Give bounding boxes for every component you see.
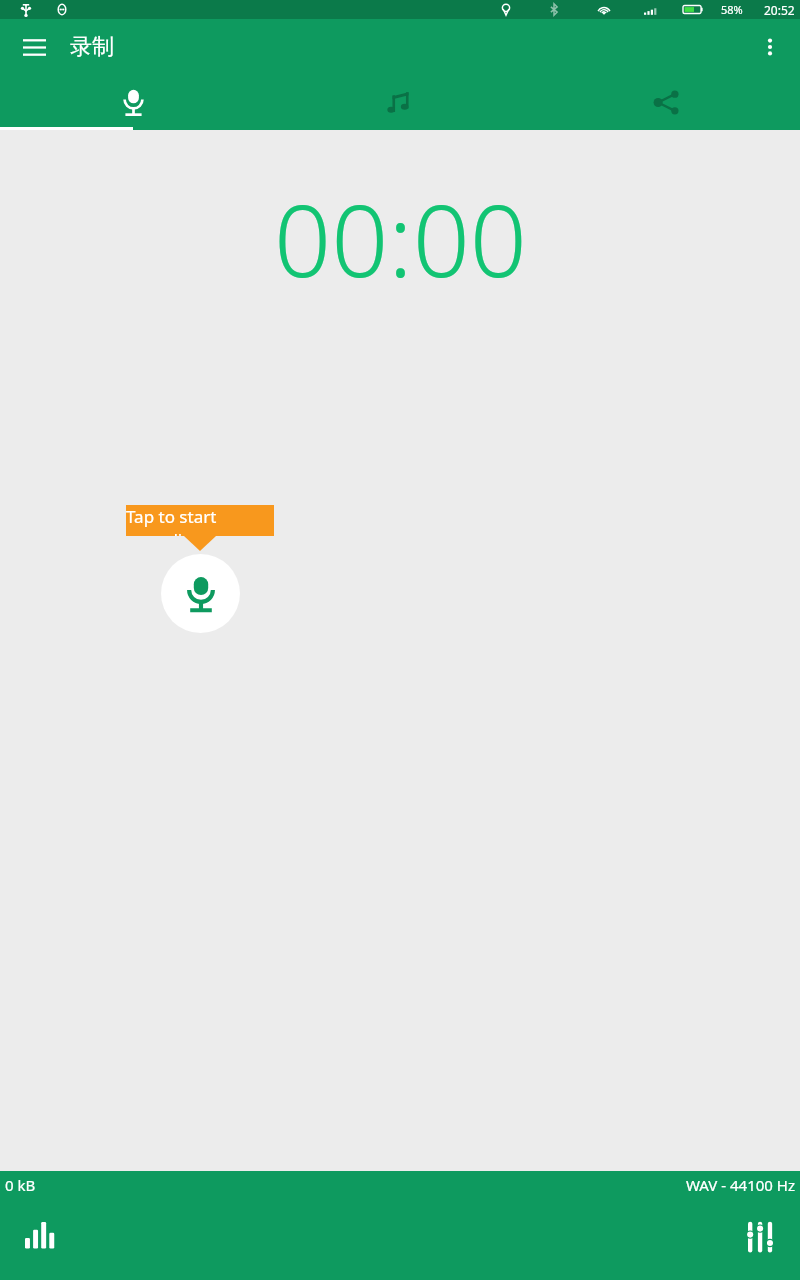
button[interactable]: Recordings tab [266, 75, 533, 130]
staticText: 00:00 [274, 170, 527, 306]
button[interactable]: Record tab [0, 75, 266, 130]
button[interactable]: Audio levels [12, 1209, 68, 1265]
button[interactable]: More options [748, 25, 792, 69]
staticText: 0 kB [5, 1175, 36, 1195]
staticText: 58% [721, 2, 743, 17]
staticText: WAV - 44100 Hz [686, 1175, 795, 1195]
staticText: 20:52 [764, 2, 795, 18]
staticText: 录制 [70, 33, 114, 61]
button[interactable]: Start recording [161, 554, 240, 633]
staticText: Tap to start recording [126, 505, 274, 536]
button[interactable]: Open navigation menu [12, 25, 56, 69]
button[interactable]: Settings [732, 1209, 788, 1265]
button[interactable]: Share tab [533, 75, 800, 130]
